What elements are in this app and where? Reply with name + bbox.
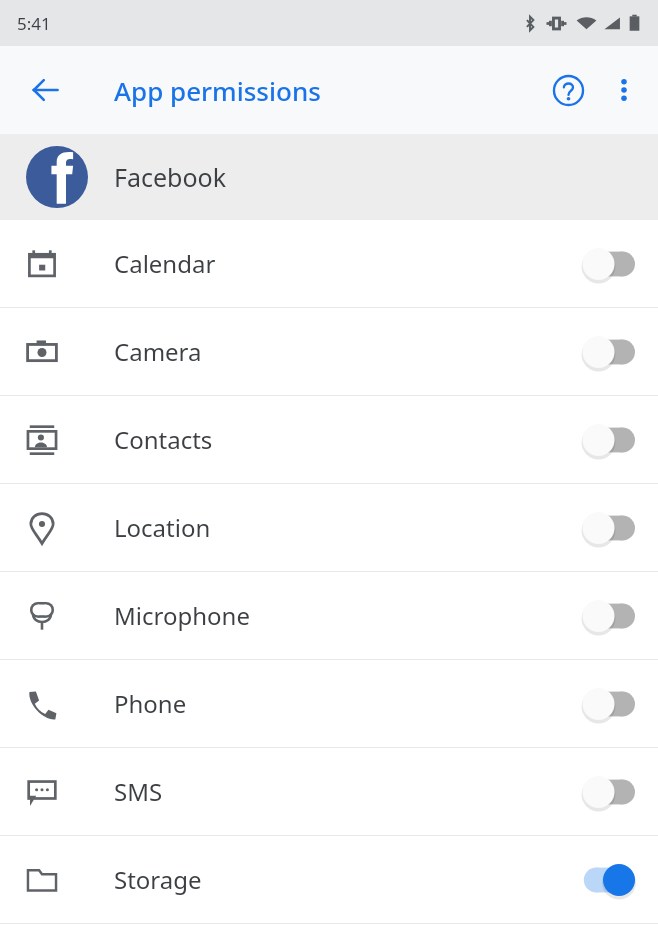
button[interactable]	[558, 321, 648, 383]
button[interactable]: Facebook	[0, 134, 658, 220]
button[interactable]	[558, 409, 648, 471]
staticText: Calendar	[114, 247, 216, 280]
button[interactable]: More options	[596, 62, 652, 118]
button[interactable]: Phone	[0, 660, 658, 747]
button[interactable]	[558, 849, 648, 911]
button[interactable]	[558, 233, 648, 295]
button[interactable]: Storage	[0, 836, 658, 923]
button[interactable]: Calendar	[0, 220, 658, 307]
button[interactable]: Contacts	[0, 396, 658, 483]
button[interactable]: Camera	[0, 308, 658, 395]
button[interactable]: Help	[540, 62, 596, 118]
staticText: Storage	[114, 863, 202, 896]
button[interactable]	[558, 673, 648, 735]
button[interactable]	[558, 761, 648, 823]
button[interactable]: SMS	[0, 748, 658, 835]
staticText: Location	[114, 511, 211, 544]
staticText: Phone	[114, 687, 187, 720]
staticText: Facebook	[114, 160, 227, 194]
staticText: Camera	[114, 335, 202, 368]
button[interactable]: Location	[0, 484, 658, 571]
staticText: Contacts	[114, 423, 213, 456]
button[interactable]: Microphone	[0, 572, 658, 659]
button[interactable]	[558, 585, 648, 647]
staticText: 5:41	[17, 12, 51, 35]
staticText: App permissions	[114, 73, 321, 108]
button[interactable]: Back	[19, 64, 71, 116]
staticText: SMS	[114, 775, 163, 808]
staticText: Microphone	[114, 599, 250, 632]
button[interactable]	[558, 497, 648, 559]
